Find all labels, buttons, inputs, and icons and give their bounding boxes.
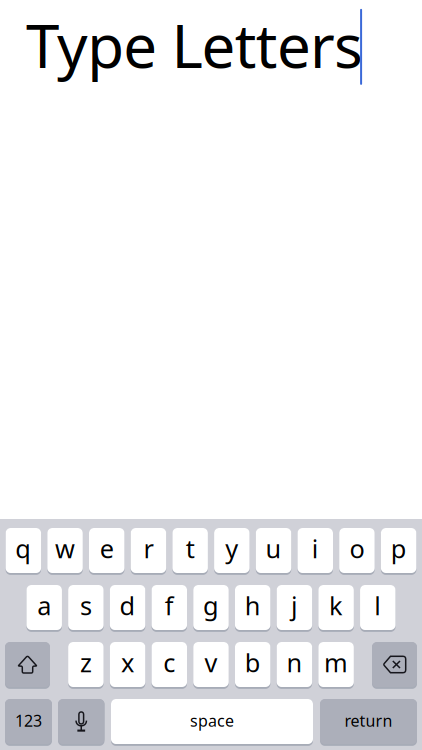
staticText: Type Letters — [26, 5, 363, 85]
button[interactable]: h — [235, 585, 270, 630]
staticText: u — [265, 532, 281, 565]
button[interactable]: Dictation — [58, 699, 104, 744]
button[interactable]: n — [277, 642, 312, 687]
staticText: k — [329, 589, 343, 622]
staticText: i — [312, 532, 319, 565]
button[interactable]: x — [110, 642, 145, 687]
staticText: n — [286, 646, 302, 679]
button[interactable]: a — [26, 585, 62, 630]
button[interactable]: y — [214, 528, 250, 573]
staticText: e — [100, 532, 114, 565]
button[interactable]: k — [318, 585, 354, 630]
button[interactable]: i — [297, 528, 333, 573]
button[interactable]: u — [256, 528, 291, 573]
staticText: space — [190, 710, 234, 731]
button[interactable]: b — [235, 642, 270, 687]
staticText: a — [37, 589, 51, 622]
button[interactable]: c — [152, 642, 187, 687]
staticText: y — [225, 532, 238, 565]
staticText: f — [165, 589, 174, 622]
button[interactable]: return — [320, 699, 417, 744]
button[interactable]: g — [193, 585, 229, 630]
staticText: x — [121, 646, 134, 679]
button[interactable]: Delete — [372, 642, 417, 687]
button[interactable]: 123 — [5, 699, 52, 744]
button[interactable]: o — [339, 528, 375, 573]
staticText: s — [80, 589, 92, 622]
button[interactable]: z — [68, 642, 104, 687]
staticText: q — [15, 532, 31, 565]
staticText: p — [391, 532, 407, 565]
staticText: return — [344, 710, 392, 731]
staticText: b — [245, 646, 261, 679]
button[interactable]: space — [111, 699, 313, 744]
staticText: d — [120, 589, 136, 622]
staticText: h — [245, 589, 261, 622]
button[interactable]: w — [47, 528, 83, 573]
button[interactable]: s — [68, 585, 104, 630]
staticText: w — [55, 532, 75, 565]
staticText: t — [186, 532, 195, 565]
button[interactable]: f — [152, 585, 187, 630]
button[interactable]: r — [131, 528, 166, 573]
button[interactable]: v — [193, 642, 229, 687]
staticText: c — [163, 646, 175, 679]
button[interactable]: t — [172, 528, 208, 573]
staticText: r — [143, 532, 153, 565]
staticText: g — [203, 589, 219, 622]
button[interactable]: Shift — [5, 642, 50, 687]
button[interactable]: m — [318, 642, 354, 687]
staticText: j — [291, 589, 298, 622]
staticText: o — [349, 532, 364, 565]
button[interactable]: q — [6, 528, 41, 573]
staticText: m — [324, 646, 348, 679]
button[interactable]: p — [381, 528, 416, 573]
staticText: z — [80, 646, 92, 679]
staticText: v — [204, 646, 217, 679]
staticText: 123 — [15, 710, 42, 731]
button[interactable]: l — [360, 585, 395, 630]
button[interactable]: d — [110, 585, 145, 630]
staticText: l — [374, 589, 381, 622]
button[interactable]: e — [89, 528, 124, 573]
button[interactable]: j — [277, 585, 312, 630]
